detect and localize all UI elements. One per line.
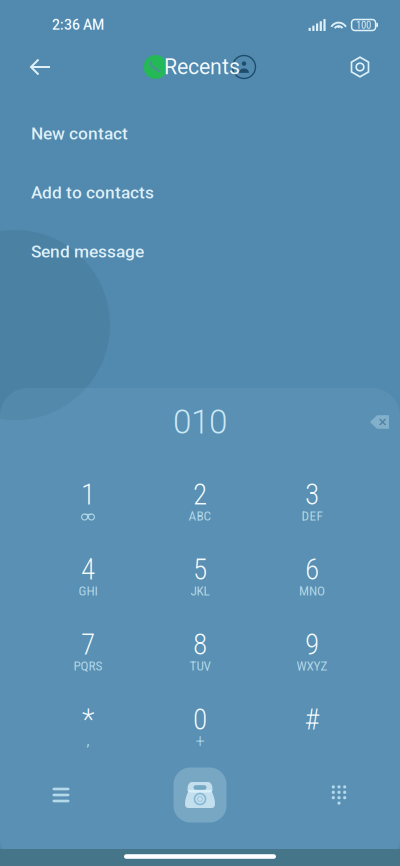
button[interactable]: 5 xyxy=(144,549,256,603)
staticText: 2 xyxy=(193,477,207,512)
button[interactable]: Call xyxy=(173,767,226,822)
staticText: TUV xyxy=(189,658,210,674)
staticText: PQRS xyxy=(73,658,102,674)
button[interactable]: New contact xyxy=(31,104,369,163)
staticText: 5 xyxy=(193,552,207,587)
staticText: 100 xyxy=(356,19,371,31)
staticText: Add to contacts xyxy=(31,182,154,203)
button[interactable]: 4 xyxy=(32,549,144,603)
staticText: MNO xyxy=(299,583,325,599)
staticText: JKL xyxy=(190,583,209,599)
button[interactable]: Send message xyxy=(31,222,369,281)
staticText: 010 xyxy=(173,402,227,442)
staticText: 7 xyxy=(81,627,95,662)
button[interactable]: 7 xyxy=(32,624,144,678)
button[interactable]: Add to contacts xyxy=(31,163,369,222)
staticText: New contact xyxy=(31,123,128,144)
button[interactable]: 9 xyxy=(256,624,368,678)
staticText: Send message xyxy=(31,241,144,262)
button[interactable]: Delete xyxy=(360,404,400,440)
button[interactable]: Back xyxy=(18,45,62,89)
staticText: + xyxy=(195,730,204,752)
button[interactable]: * xyxy=(32,699,144,753)
staticText: Recents xyxy=(164,54,240,79)
staticText: * xyxy=(82,702,94,737)
button[interactable]: 6 xyxy=(256,549,368,603)
button[interactable]: More options xyxy=(32,767,90,823)
staticText: 6 xyxy=(305,552,319,587)
staticText: 4 xyxy=(81,552,95,587)
button[interactable]: 1 xyxy=(32,474,144,528)
staticText: 2:36 AM xyxy=(52,17,104,33)
staticText: 1 xyxy=(81,477,95,512)
staticText: ABC xyxy=(188,508,211,524)
button[interactable]: 8 xyxy=(144,624,256,678)
staticText: 9 xyxy=(305,627,319,662)
button[interactable]: Settings xyxy=(338,45,382,89)
button[interactable]: Keypad xyxy=(310,767,368,823)
button[interactable]: 0 xyxy=(144,699,256,753)
button[interactable]: 2 xyxy=(144,474,256,528)
staticText: # xyxy=(304,702,319,737)
staticText: GHI xyxy=(78,583,97,599)
staticText: DEF xyxy=(301,508,322,524)
staticText: WXYZ xyxy=(296,658,327,674)
button[interactable]: # xyxy=(256,699,368,753)
staticText: , xyxy=(86,732,89,750)
button[interactable]: 3 xyxy=(256,474,368,528)
staticText: 8 xyxy=(193,627,207,662)
staticText: 0 xyxy=(193,702,207,737)
staticText: 3 xyxy=(305,477,319,512)
